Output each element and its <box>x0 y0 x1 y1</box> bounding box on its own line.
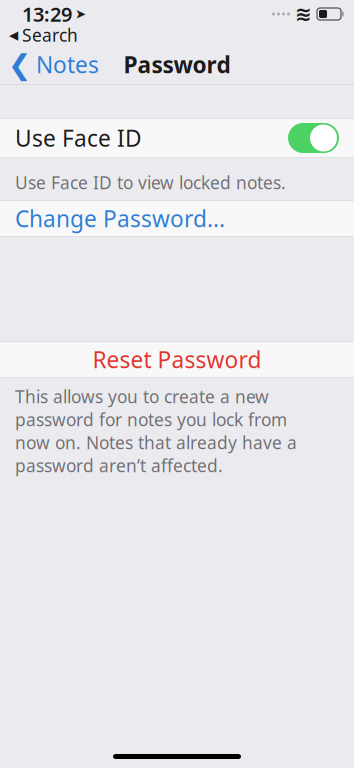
button[interactable]: Use Face ID <box>0 118 354 158</box>
staticText: 13:29 <box>22 1 72 27</box>
staticText: Use Face ID <box>15 123 142 153</box>
button[interactable]: Reset Password <box>0 341 354 378</box>
staticText: Reset Password <box>92 344 261 374</box>
button[interactable]: ❮ <box>0 43 99 86</box>
staticText: ≋ <box>295 3 312 25</box>
staticText: ➤ <box>75 6 86 21</box>
staticText: ❮ <box>8 49 31 80</box>
staticText: This allows you to create a new password… <box>15 385 297 477</box>
staticText: Search <box>22 23 78 46</box>
staticText: Password <box>123 49 230 79</box>
button[interactable]: Change Password... <box>0 200 354 237</box>
staticText: ◀ <box>9 28 18 42</box>
staticText: Change Password... <box>15 203 225 233</box>
staticText: Notes <box>36 49 99 79</box>
staticText: Use Face ID to view locked notes. <box>15 171 286 194</box>
